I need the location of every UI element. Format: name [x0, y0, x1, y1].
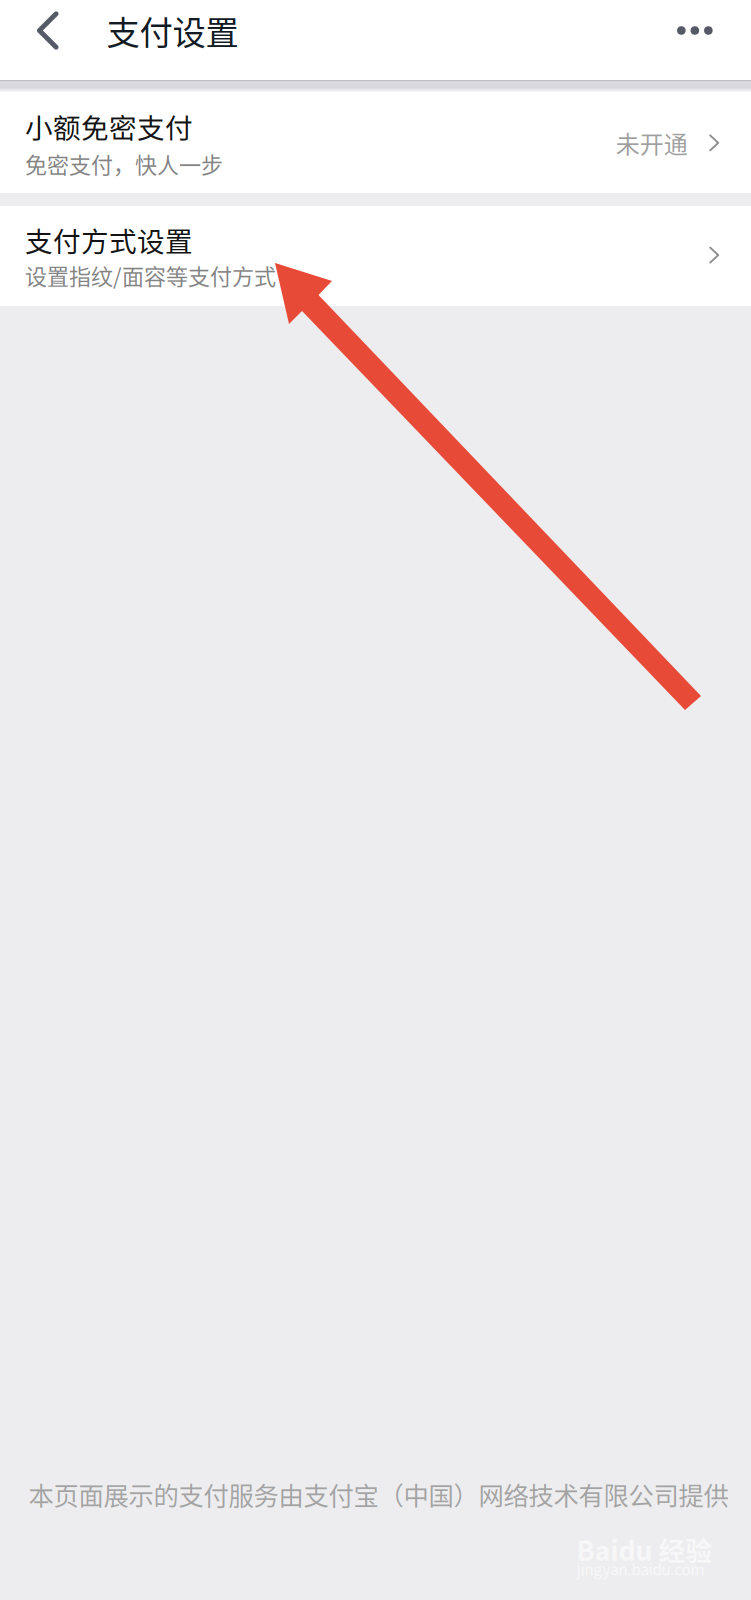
button[interactable]: 小额免密支付 [0, 92, 751, 193]
button[interactable]: 支付方式设置 [0, 206, 751, 306]
button[interactable]: Back [0, 0, 80, 61]
staticText: 未开通 [616, 125, 688, 160]
staticText: 本页面展示的支付服务由支付宝（中国）网络技术有限公司提供 [28, 1476, 728, 1512]
button[interactable]: More options [651, 0, 751, 61]
staticText: 免密支付，快人一步 [25, 148, 223, 180]
staticText: 支付方式设置 [25, 220, 193, 260]
staticText: 设置指纹/面容等支付方式 [25, 259, 276, 291]
staticText: 小额免密支付 [25, 106, 193, 146]
staticText: jingyan.baidu.com [576, 1558, 704, 1580]
staticText: Baidu 经验 [576, 1530, 712, 1568]
staticText: 支付设置 [106, 6, 238, 55]
